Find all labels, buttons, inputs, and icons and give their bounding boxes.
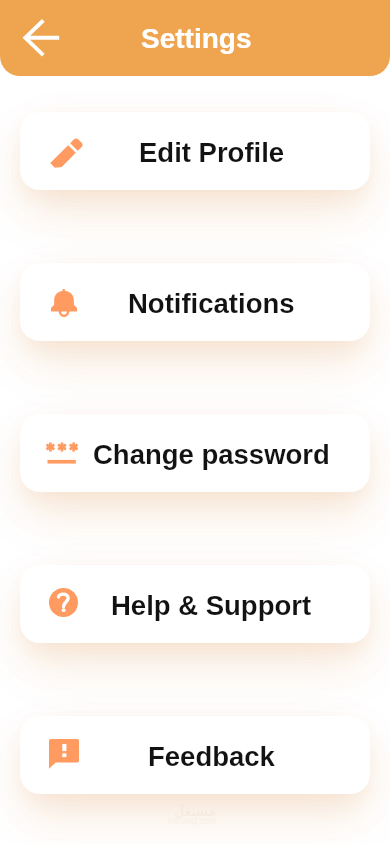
staticText: Edit Profile xyxy=(139,137,285,168)
staticText: Settings xyxy=(141,23,252,54)
button[interactable]: Back xyxy=(18,14,66,62)
button[interactable]: Help & Support xyxy=(20,565,370,643)
button[interactable]: Notifications xyxy=(20,263,370,341)
staticText: Help & Support xyxy=(111,590,312,621)
button[interactable]: Feedback xyxy=(20,716,370,794)
staticText: mostaql.com xyxy=(168,816,217,825)
button[interactable]: Edit Profile xyxy=(20,112,370,190)
staticText: Feedback xyxy=(148,741,275,772)
staticText: Change password xyxy=(93,439,330,470)
button[interactable]: Change password xyxy=(20,414,370,492)
staticText: Notifications xyxy=(128,288,295,319)
staticText: مستقل xyxy=(174,803,216,819)
